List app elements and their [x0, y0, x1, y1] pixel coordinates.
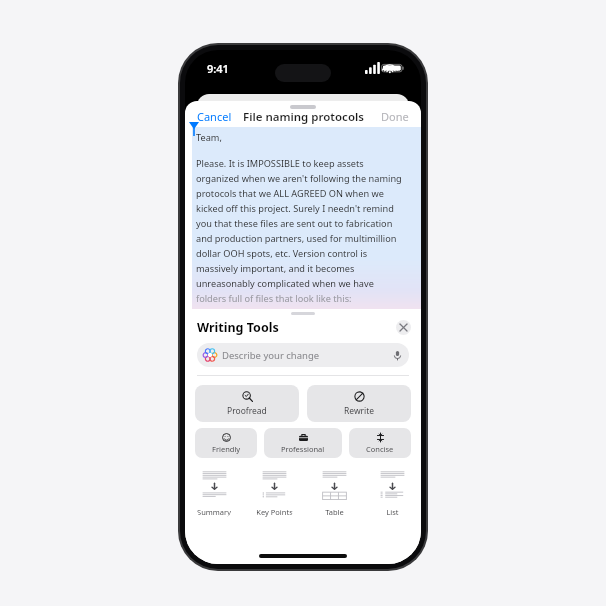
staticText: Summary — [197, 507, 231, 517]
staticText: Professional — [281, 444, 325, 454]
staticText: Describe your change — [222, 349, 320, 362]
staticText: you that these files are sent out to fab… — [196, 217, 393, 230]
staticText: Writing Tools — [197, 319, 279, 336]
staticText: List — [386, 507, 399, 517]
button[interactable]: Cancel — [193, 107, 236, 126]
staticText: protocols that we ALL AGREED ON when we — [196, 187, 384, 200]
staticText: massively important, and it becomes — [196, 262, 355, 275]
staticText: organized when we aren't following the n… — [196, 172, 402, 185]
staticText: dollar OOH spots, etc. Version control i… — [196, 247, 368, 260]
staticText: Rewrite — [344, 405, 375, 417]
staticText: Table — [325, 507, 344, 517]
staticText: and production partners, used for multim… — [196, 232, 397, 245]
button[interactable]: Done — [377, 107, 413, 126]
button[interactable]: Proofread — [195, 385, 299, 422]
staticText: Friendly — [212, 444, 241, 454]
staticText: Done — [381, 109, 409, 124]
button[interactable]: Concise — [349, 428, 411, 458]
button[interactable]: Table — [318, 467, 351, 517]
staticText: Key Points — [256, 507, 293, 517]
button[interactable]: Describe your change — [197, 343, 409, 367]
staticText: Proofread — [227, 405, 267, 417]
staticText: Team, — [196, 131, 222, 144]
staticText: Please. It is IMPOSSIBLE to keep assets — [196, 157, 364, 170]
button[interactable]: Rewrite — [307, 385, 411, 422]
staticText: File naming protocols — [243, 109, 364, 125]
staticText: folders full of files that look like thi… — [196, 292, 352, 305]
button[interactable]: Professional — [264, 428, 342, 458]
staticText: kicked off this project. Surely I needn'… — [196, 202, 394, 215]
staticText: 9:41 — [207, 61, 229, 76]
staticText: Cancel — [197, 109, 232, 124]
button[interactable]: Key Points — [256, 467, 293, 517]
button[interactable]: Friendly — [195, 428, 257, 458]
staticText: unreasonably complicated when we have — [196, 277, 374, 290]
staticText: Concise — [366, 444, 394, 454]
button[interactable]: Summary — [197, 467, 231, 517]
button[interactable]: List — [376, 467, 409, 517]
button[interactable]: Close — [396, 320, 411, 335]
